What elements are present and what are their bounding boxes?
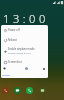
staticText: Power off [8, 28, 20, 32]
button[interactable]: Switch user [25, 67, 28, 70]
button[interactable]: Bug report [3, 67, 6, 70]
button[interactable]: Lockdown [42, 67, 45, 70]
button[interactable]: Screenshot [1, 57, 48, 67]
button[interactable]: Messages [14, 87, 21, 94]
button[interactable]: WhatsApp [26, 87, 33, 94]
button[interactable]: Reboot [1, 35, 48, 45]
staticText: Screenshot [8, 60, 22, 64]
staticText: Reboot [8, 38, 17, 42]
button[interactable]: Phone [2, 87, 9, 94]
button[interactable]: Power off [1, 25, 48, 35]
button[interactable]: Camera [39, 87, 46, 94]
button[interactable]: Enable airplane mode [1, 45, 48, 57]
staticText: 13:00 [3, 11, 49, 26]
staticText: Enable airplane mode [8, 47, 35, 51]
staticText: Disable mobile & Wi-Fi [8, 52, 31, 55]
